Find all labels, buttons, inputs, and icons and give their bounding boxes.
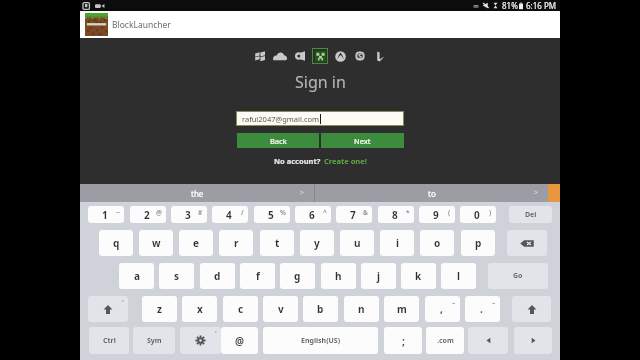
button[interactable]: x: [182, 296, 217, 322]
button[interactable]: Office: [290, 47, 310, 65]
button[interactable]: m: [384, 296, 419, 322]
staticText: h: [335, 269, 342, 283]
button[interactable]: Bing: [370, 47, 390, 65]
staticText: Sym: [147, 336, 162, 346]
staticText: e: [193, 236, 199, 250]
staticText: k: [415, 269, 422, 283]
staticText: x: [197, 302, 203, 316]
button[interactable]: b: [303, 296, 338, 322]
button[interactable]: raful2047@gmail.com: [236, 111, 404, 126]
staticText: r: [234, 236, 239, 250]
button[interactable]: q: [99, 230, 133, 256]
button[interactable]: k: [401, 263, 436, 289]
button[interactable]: l: [441, 263, 476, 289]
staticText: Back: [270, 136, 287, 146]
button[interactable]: i: [380, 230, 414, 256]
staticText: No account?: [274, 156, 321, 166]
button[interactable]: Next: [321, 133, 404, 148]
staticText: c: [238, 302, 244, 316]
button[interactable]: z: [142, 296, 177, 322]
button[interactable]: g: [280, 263, 315, 289]
staticText: Create one!: [324, 156, 367, 166]
button[interactable]: Left: [468, 327, 508, 354]
staticText: raful2047@gmail.com: [242, 114, 320, 124]
button[interactable]: Backspace: [507, 230, 547, 256]
button[interactable]: 8: [378, 206, 414, 223]
button[interactable]: n: [344, 296, 379, 322]
button[interactable]: 6: [295, 206, 331, 223]
button[interactable]: 4: [212, 206, 248, 223]
button[interactable]: o: [420, 230, 454, 256]
button[interactable]: BlockLauncher: [80, 11, 560, 38]
button[interactable]: Del: [509, 206, 552, 223]
button[interactable]: e: [179, 230, 213, 256]
staticText: 1: [102, 208, 108, 222]
staticText: *: [406, 208, 410, 217]
button[interactable]: Go: [488, 263, 548, 289]
staticText: w: [152, 236, 161, 250]
button[interactable]: d: [200, 263, 235, 289]
button[interactable]: j: [361, 263, 396, 289]
button[interactable]: w: [139, 230, 173, 256]
button[interactable]: 3: [171, 206, 207, 223]
button[interactable]: a: [119, 263, 154, 289]
button[interactable]: 9: [419, 206, 455, 223]
staticText: Next: [354, 136, 371, 146]
button[interactable]: 5: [254, 206, 290, 223]
other: Right: [529, 336, 538, 345]
button[interactable]: 1: [88, 206, 124, 223]
button[interactable]: p: [461, 230, 495, 256]
staticText: v: [278, 302, 284, 316]
staticText: 6: [309, 208, 315, 222]
button[interactable]: Create one!: [324, 156, 367, 166]
other: Settings: [195, 335, 206, 346]
button[interactable]: OneDrive: [270, 47, 290, 65]
button[interactable]: English(US): [263, 327, 378, 354]
staticText: Sign in: [295, 71, 346, 93]
button[interactable]: h: [321, 263, 356, 289]
button[interactable]: Sym: [133, 327, 175, 354]
staticText: 0: [474, 208, 480, 222]
button[interactable]: Windows: [250, 47, 270, 65]
button[interactable]: r: [219, 230, 253, 256]
button[interactable]: .com: [426, 327, 464, 354]
button[interactable]: Xbox: [330, 47, 350, 65]
staticText: Del: [525, 210, 537, 220]
button[interactable]: to: [315, 184, 548, 202]
button[interactable]: Shift: [88, 296, 128, 322]
button[interactable]: .: [465, 296, 500, 322]
button[interactable]: Minecraft: [310, 47, 330, 65]
staticText: f: [256, 269, 260, 283]
button[interactable]: s: [159, 263, 194, 289]
staticText: %: [280, 208, 286, 217]
button[interactable]: Ctrl: [89, 327, 129, 354]
staticText: ,: [440, 302, 443, 316]
button[interactable]: 0: [460, 206, 496, 223]
button[interactable]: u: [340, 230, 374, 256]
button[interactable]: t: [260, 230, 294, 256]
button[interactable]: Back: [237, 133, 319, 148]
button[interactable]: Settings: [180, 327, 221, 354]
button[interactable]: v: [263, 296, 298, 322]
staticText: English(US): [301, 336, 341, 346]
staticText: #: [198, 208, 203, 217]
staticText: s: [174, 269, 180, 283]
button[interactable]: f: [240, 263, 275, 289]
button[interactable]: Skype: [350, 47, 370, 65]
button[interactable]: Shift: [512, 296, 551, 322]
button[interactable]: Right: [514, 327, 552, 354]
staticText: z: [157, 302, 162, 316]
staticText: Ctrl: [103, 336, 116, 346]
button[interactable]: 2: [130, 206, 166, 223]
button[interactable]: @: [221, 327, 258, 354]
staticText: y: [314, 236, 320, 250]
staticText: 8: [392, 208, 398, 222]
button[interactable]: c: [223, 296, 258, 322]
button[interactable]: y: [300, 230, 334, 256]
button[interactable]: ;: [384, 327, 422, 354]
button[interactable]: 7: [336, 206, 372, 223]
staticText: 4: [226, 208, 232, 222]
button[interactable]: ,: [425, 296, 460, 322]
button[interactable]: the: [80, 184, 314, 202]
